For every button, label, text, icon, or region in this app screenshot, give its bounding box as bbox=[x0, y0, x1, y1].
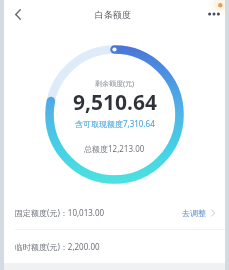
staticText: 总额度12,213.00 bbox=[84, 143, 145, 154]
button[interactable]: More options bbox=[204, 4, 224, 24]
button[interactable]: Back bbox=[8, 4, 28, 24]
button[interactable]: 去调整 bbox=[174, 202, 229, 224]
staticText: 剩余额度(元) bbox=[95, 79, 135, 89]
staticText: 含可取现额度7,310.64 bbox=[75, 118, 155, 129]
staticText: 固定额度(元)：10,013.00 bbox=[15, 207, 105, 218]
staticText: 9,510.64 bbox=[73, 88, 157, 117]
staticText: 白条额度 bbox=[95, 9, 131, 20]
staticText: 临时额度(元)：2,200.00 bbox=[15, 241, 100, 252]
staticText: 去调整 bbox=[182, 208, 206, 218]
